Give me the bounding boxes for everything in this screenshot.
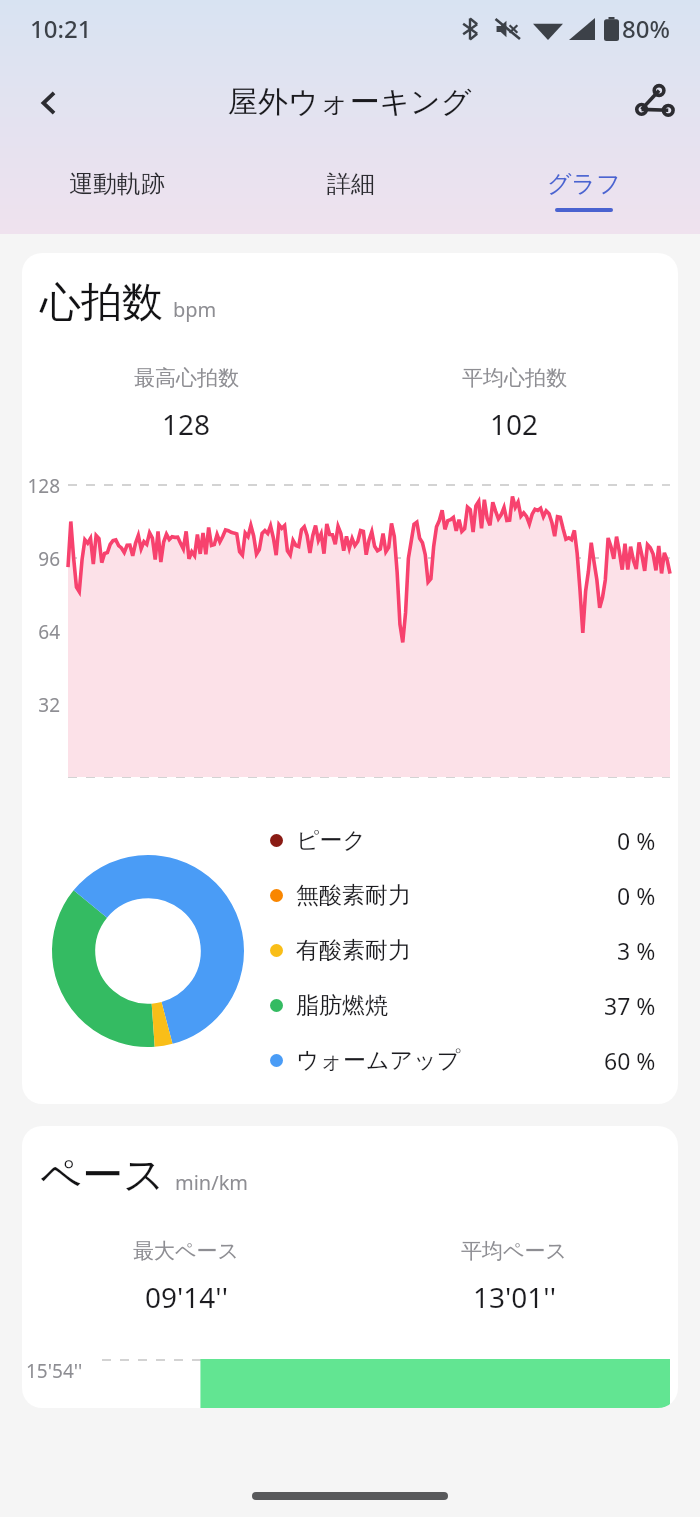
- button[interactable]: 詳細: [234, 156, 467, 234]
- staticText: 37 %: [604, 990, 656, 1021]
- staticText: 運動軌跡: [69, 169, 165, 199]
- staticText: 3 %: [617, 935, 656, 966]
- staticText: 32: [22, 692, 60, 718]
- staticText: 屋外ウォーキング: [228, 83, 472, 121]
- staticText: 詳細: [327, 169, 375, 199]
- button[interactable]: 心拍数: [22, 253, 678, 1104]
- staticText: 60 %: [604, 1045, 656, 1076]
- staticText: 平均心拍数: [462, 365, 567, 391]
- staticText: min/km: [175, 1169, 249, 1196]
- staticText: bpm: [173, 296, 217, 323]
- button[interactable]: 脂肪燃焼: [270, 990, 656, 1021]
- staticText: 0 %: [617, 825, 656, 856]
- button[interactable]: Share: [624, 72, 684, 132]
- staticText: 0 %: [617, 880, 656, 911]
- staticText: 128: [162, 405, 211, 443]
- staticText: 09'14'': [145, 1278, 228, 1316]
- button[interactable]: ウォームアップ: [270, 1045, 656, 1076]
- staticText: ウォームアップ: [296, 1046, 461, 1075]
- staticText: 15'54'': [26, 1358, 83, 1384]
- button[interactable]: ピーク: [270, 825, 656, 856]
- button[interactable]: 運動軌跡: [0, 156, 234, 234]
- button[interactable]: 無酸素耐力: [270, 880, 656, 911]
- staticText: グラフ: [547, 169, 621, 199]
- staticText: ピーク: [296, 826, 367, 855]
- staticText: ペース: [40, 1150, 165, 1202]
- button[interactable]: ペース: [22, 1126, 678, 1408]
- staticText: 96: [22, 546, 60, 572]
- staticText: 13'01'': [473, 1278, 556, 1316]
- staticText: 有酸素耐力: [296, 936, 411, 965]
- button[interactable]: グラフ: [467, 156, 700, 234]
- staticText: 10:21: [30, 12, 92, 45]
- staticText: 80%: [622, 12, 670, 45]
- staticText: 心拍数: [40, 277, 163, 329]
- staticText: 102: [490, 405, 539, 443]
- button[interactable]: 有酸素耐力: [270, 935, 656, 966]
- staticText: 128: [22, 473, 60, 499]
- staticText: 最高心拍数: [134, 365, 239, 391]
- staticText: 脂肪燃焼: [296, 991, 388, 1020]
- staticText: 最大ペース: [133, 1238, 239, 1264]
- staticText: 64: [22, 619, 60, 645]
- staticText: 無酸素耐力: [296, 881, 411, 910]
- staticText: 平均ペース: [461, 1238, 567, 1264]
- button[interactable]: Back: [22, 76, 76, 130]
